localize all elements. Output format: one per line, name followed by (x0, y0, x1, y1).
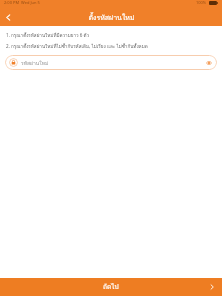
staticText: 1. กรุณาตั้งรหัสผ่านใหม่ที่มีความยาว 6 ต… (6, 32, 90, 39)
button[interactable]: Show password (204, 58, 213, 67)
staticText: 100% (196, 0, 207, 5)
button[interactable]: ถัดไป (0, 278, 222, 296)
staticText: ถัดไป (103, 282, 119, 292)
button[interactable]: Back (0, 9, 17, 26)
staticText: รหัสผ่านใหม่ (21, 59, 204, 67)
staticText: 2. กรุณาตั้งรหัสผ่านใหม่ที่ไม่ซ้ำกับรหัส… (6, 43, 148, 50)
staticText: ตั้งรหัสผ่านใหม่ (88, 12, 135, 23)
staticText: 2:00 PM Wed Jun 5 (4, 0, 40, 5)
button[interactable]: รหัสผ่านใหม่ (5, 55, 217, 70)
